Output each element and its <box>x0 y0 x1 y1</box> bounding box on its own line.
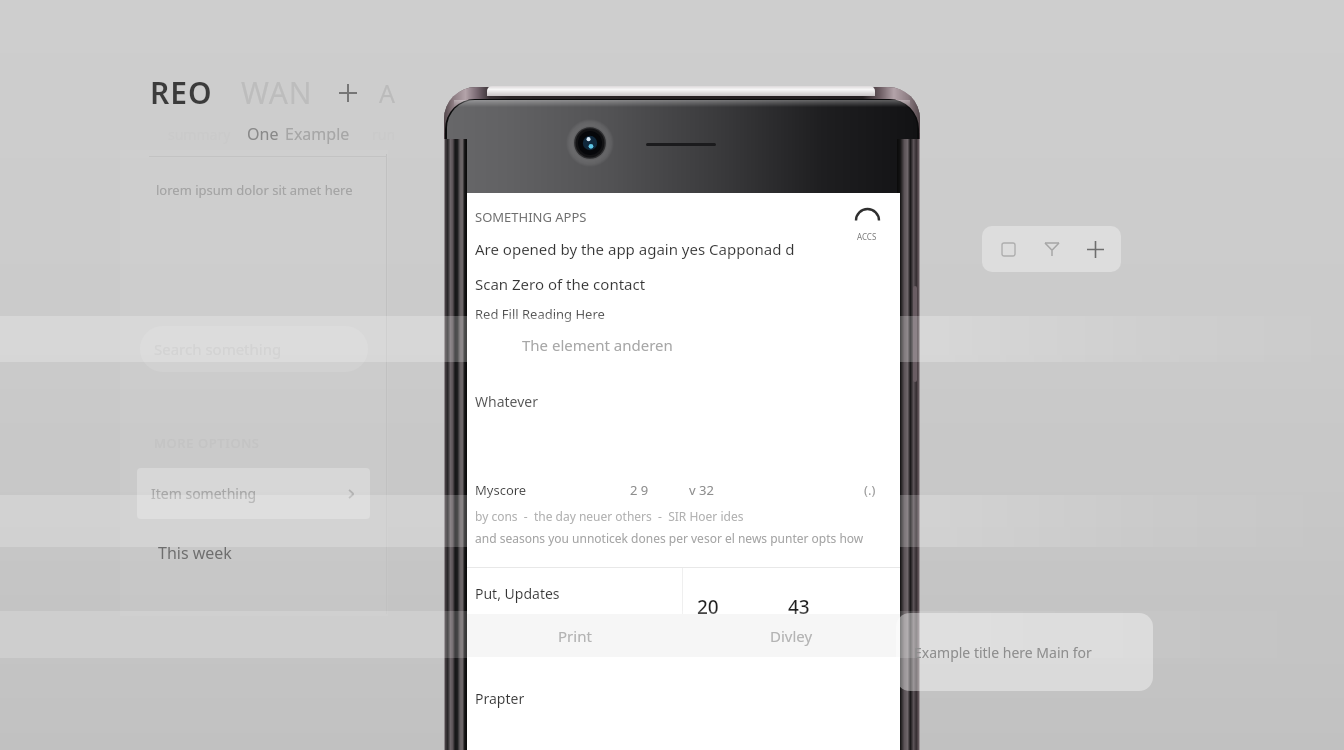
staticText: v 32 <box>689 481 714 499</box>
staticText: Print <box>558 626 592 646</box>
staticText: ACCS <box>857 231 877 242</box>
button[interactable]: Print <box>467 614 683 657</box>
staticText: Red Fill Reading Here <box>475 305 605 323</box>
staticText: Example title here Main for <box>914 643 1092 662</box>
staticText: Item something <box>151 484 344 503</box>
staticText: Prapter <box>475 689 525 708</box>
staticText: SOMETHING APPS <box>475 208 587 226</box>
button[interactable]: Item something <box>137 468 370 519</box>
button[interactable]: Add <box>1078 232 1112 266</box>
staticText: 43 <box>788 594 810 620</box>
button[interactable]: Example title here Main for <box>896 613 1153 691</box>
staticText: 20 <box>697 594 719 620</box>
staticText: and seasons you unnoticek dones per veso… <box>475 530 864 546</box>
staticText: REO <box>150 72 213 113</box>
staticText: The element anderen <box>522 335 673 355</box>
staticText: Put, Updates <box>475 584 560 603</box>
button[interactable]: Search something <box>140 326 368 372</box>
staticText: by cons - the day neuer others - SIR Hoe… <box>475 508 744 524</box>
button[interactable]: Divley <box>683 614 900 657</box>
staticText: (.) <box>864 481 876 499</box>
staticText: Whatever <box>475 392 538 411</box>
staticText: Myscore <box>475 481 527 499</box>
button[interactable]: Note <box>991 232 1025 266</box>
staticText: Are opened by the app again yes Capponad… <box>475 239 795 259</box>
staticText: One <box>247 123 279 145</box>
staticText: Example <box>285 123 350 145</box>
staticText: 2 9 <box>630 481 649 499</box>
staticText: lorem ipsum dolor sit amet here <box>156 181 353 199</box>
button[interactable]: Filter <box>1035 232 1069 266</box>
staticText: WAN <box>241 72 313 113</box>
staticText: This week <box>158 542 232 564</box>
staticText: A <box>379 76 395 110</box>
staticText: Divley <box>770 626 813 646</box>
staticText: Scan Zero of the contact <box>475 274 646 294</box>
